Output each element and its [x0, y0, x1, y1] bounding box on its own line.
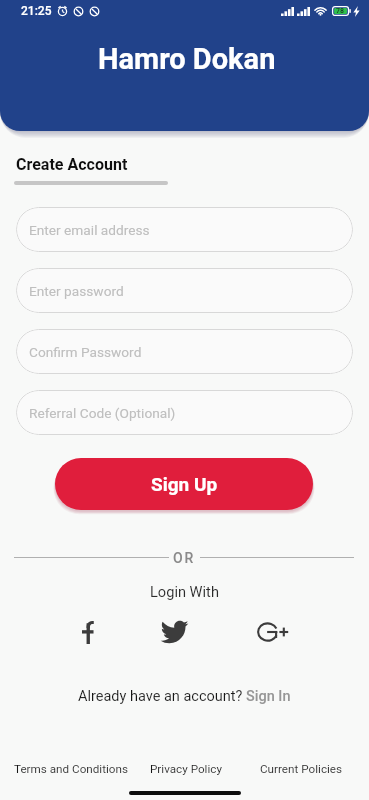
staticText: Already have an account?	[78, 688, 246, 705]
staticText: Privacy Policy	[150, 762, 222, 776]
staticText: Sign In	[246, 688, 291, 705]
staticText: Enter email address	[29, 222, 150, 238]
button[interactable]: Sign Up	[55, 458, 313, 510]
button[interactable]: Confirm Password	[16, 329, 353, 374]
button[interactable]: Login with Google Plus	[255, 615, 289, 649]
button[interactable]: Terms and Conditions	[14, 762, 129, 776]
staticText: Terms and Conditions	[14, 762, 129, 776]
staticText: 78	[336, 7, 345, 15]
button[interactable]: Enter password	[16, 268, 353, 313]
button[interactable]: Login with Facebook	[71, 615, 105, 649]
staticText: Hamro Dokan	[98, 42, 276, 76]
staticText: Referral Code (Optional)	[29, 405, 176, 421]
button[interactable]: Referral Code (Optional)	[16, 390, 353, 435]
staticText: Sign Up	[151, 473, 218, 495]
staticText: OR	[173, 550, 196, 566]
staticText: Current Policies	[260, 762, 343, 776]
button[interactable]: Current Policies	[260, 762, 343, 776]
staticText: Enter password	[29, 283, 124, 299]
button[interactable]: Login with Twitter	[157, 615, 191, 649]
staticText: Create Account	[16, 155, 128, 174]
button[interactable]: Sign In	[246, 688, 291, 705]
staticText: Confirm Password	[29, 344, 142, 360]
button[interactable]: Enter email address	[16, 207, 353, 252]
staticText: Login With	[150, 583, 219, 600]
button[interactable]: Privacy Policy	[150, 762, 222, 776]
staticText: 21:25	[21, 4, 52, 18]
